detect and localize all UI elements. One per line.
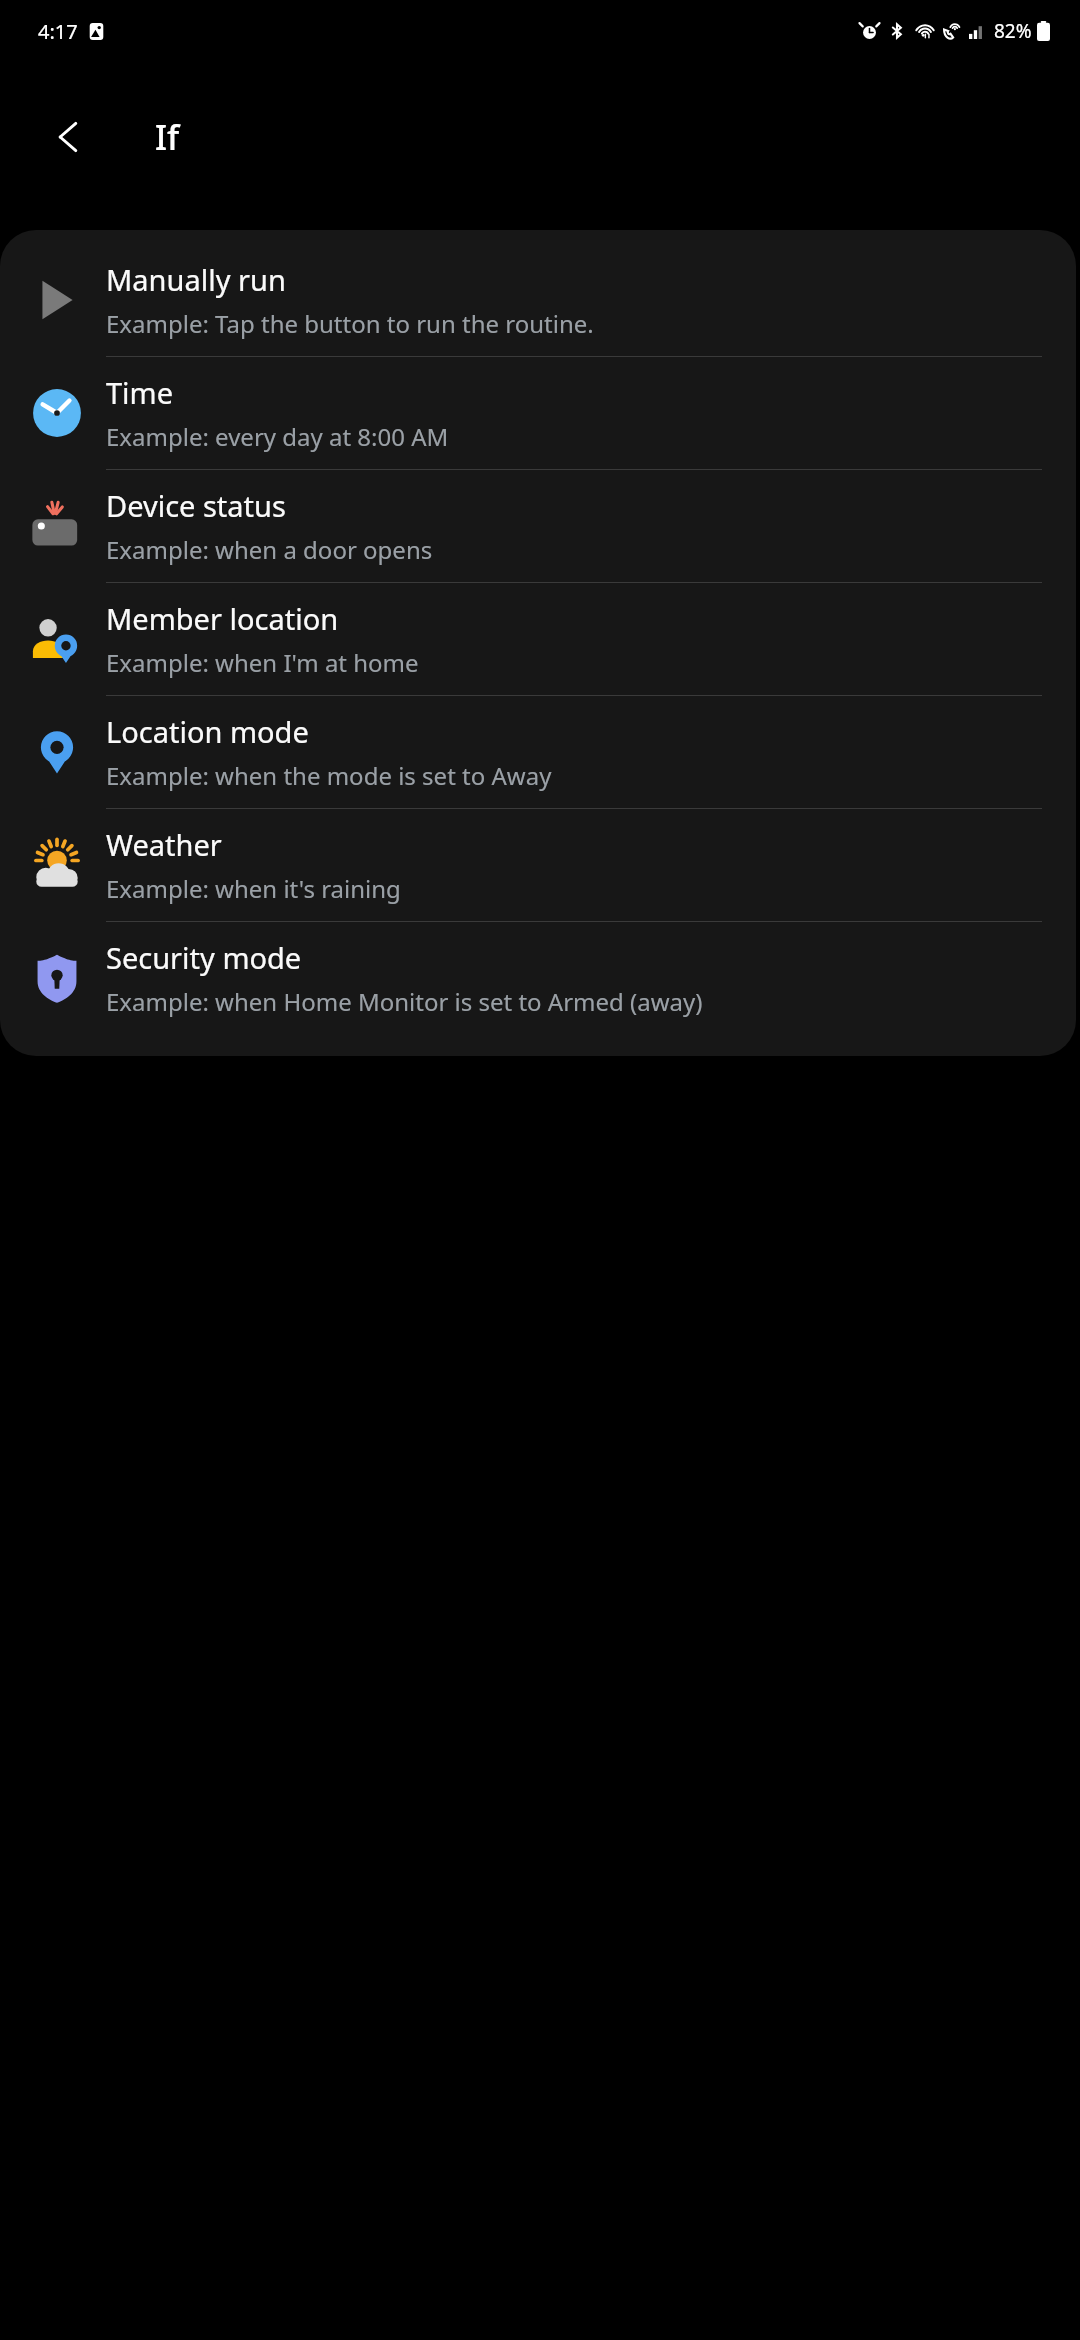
staticText: 4:17 <box>38 18 78 45</box>
staticText: Example: when I'm at home <box>106 646 419 679</box>
staticText: If <box>155 114 180 160</box>
staticText: Manually run <box>106 260 286 299</box>
staticText: Example: when it's raining <box>106 872 401 905</box>
staticText: Weather <box>106 825 222 864</box>
button[interactable]: Back <box>38 106 100 168</box>
button[interactable]: Security mode <box>0 922 1076 1034</box>
staticText: Example: when a door opens <box>106 533 433 566</box>
button[interactable]: Time <box>0 357 1076 469</box>
button[interactable]: Member location <box>0 583 1076 695</box>
staticText: Time <box>106 373 174 412</box>
staticText: Location mode <box>106 712 309 751</box>
staticText: Example: when the mode is set to Away <box>106 759 552 792</box>
button[interactable]: Device status <box>0 470 1076 582</box>
button[interactable]: Location mode <box>0 696 1076 808</box>
staticText: Device status <box>106 486 286 525</box>
staticText: Member location <box>106 599 339 638</box>
button[interactable]: Weather <box>0 809 1076 921</box>
staticText: Example: every day at 8:00 AM <box>106 420 449 453</box>
button[interactable]: Manually run <box>0 244 1076 356</box>
staticText: Example: when Home Monitor is set to Arm… <box>106 985 703 1018</box>
staticText: 82% <box>994 18 1032 44</box>
staticText: Example: Tap the button to run the routi… <box>106 307 594 340</box>
staticText: Security mode <box>106 938 302 977</box>
